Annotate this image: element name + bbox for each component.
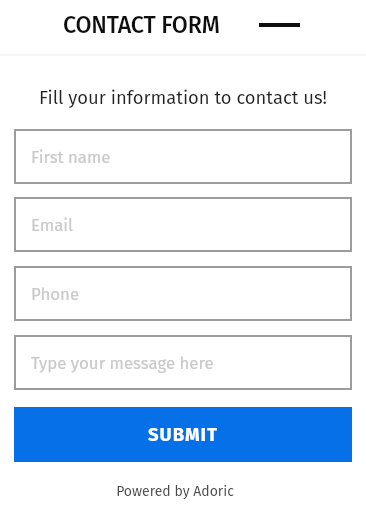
staticText: SUBMIT — [148, 424, 218, 446]
button[interactable]: SUBMIT — [14, 407, 352, 462]
staticText: Phone — [31, 284, 80, 304]
button[interactable]: Phone — [14, 266, 352, 321]
button[interactable]: Type your message here — [14, 335, 352, 390]
staticText: Email — [31, 215, 74, 235]
staticText: CONTACT FORM — [63, 11, 220, 39]
button[interactable]: Close — [246, 8, 312, 42]
button[interactable]: First name — [14, 129, 352, 184]
staticText: Type your message here — [31, 353, 214, 373]
staticText: Powered by Adoric — [116, 483, 234, 499]
staticText: First name — [31, 147, 111, 167]
button[interactable]: Email — [14, 197, 352, 252]
staticText: Fill your information to contact us! — [39, 87, 327, 109]
